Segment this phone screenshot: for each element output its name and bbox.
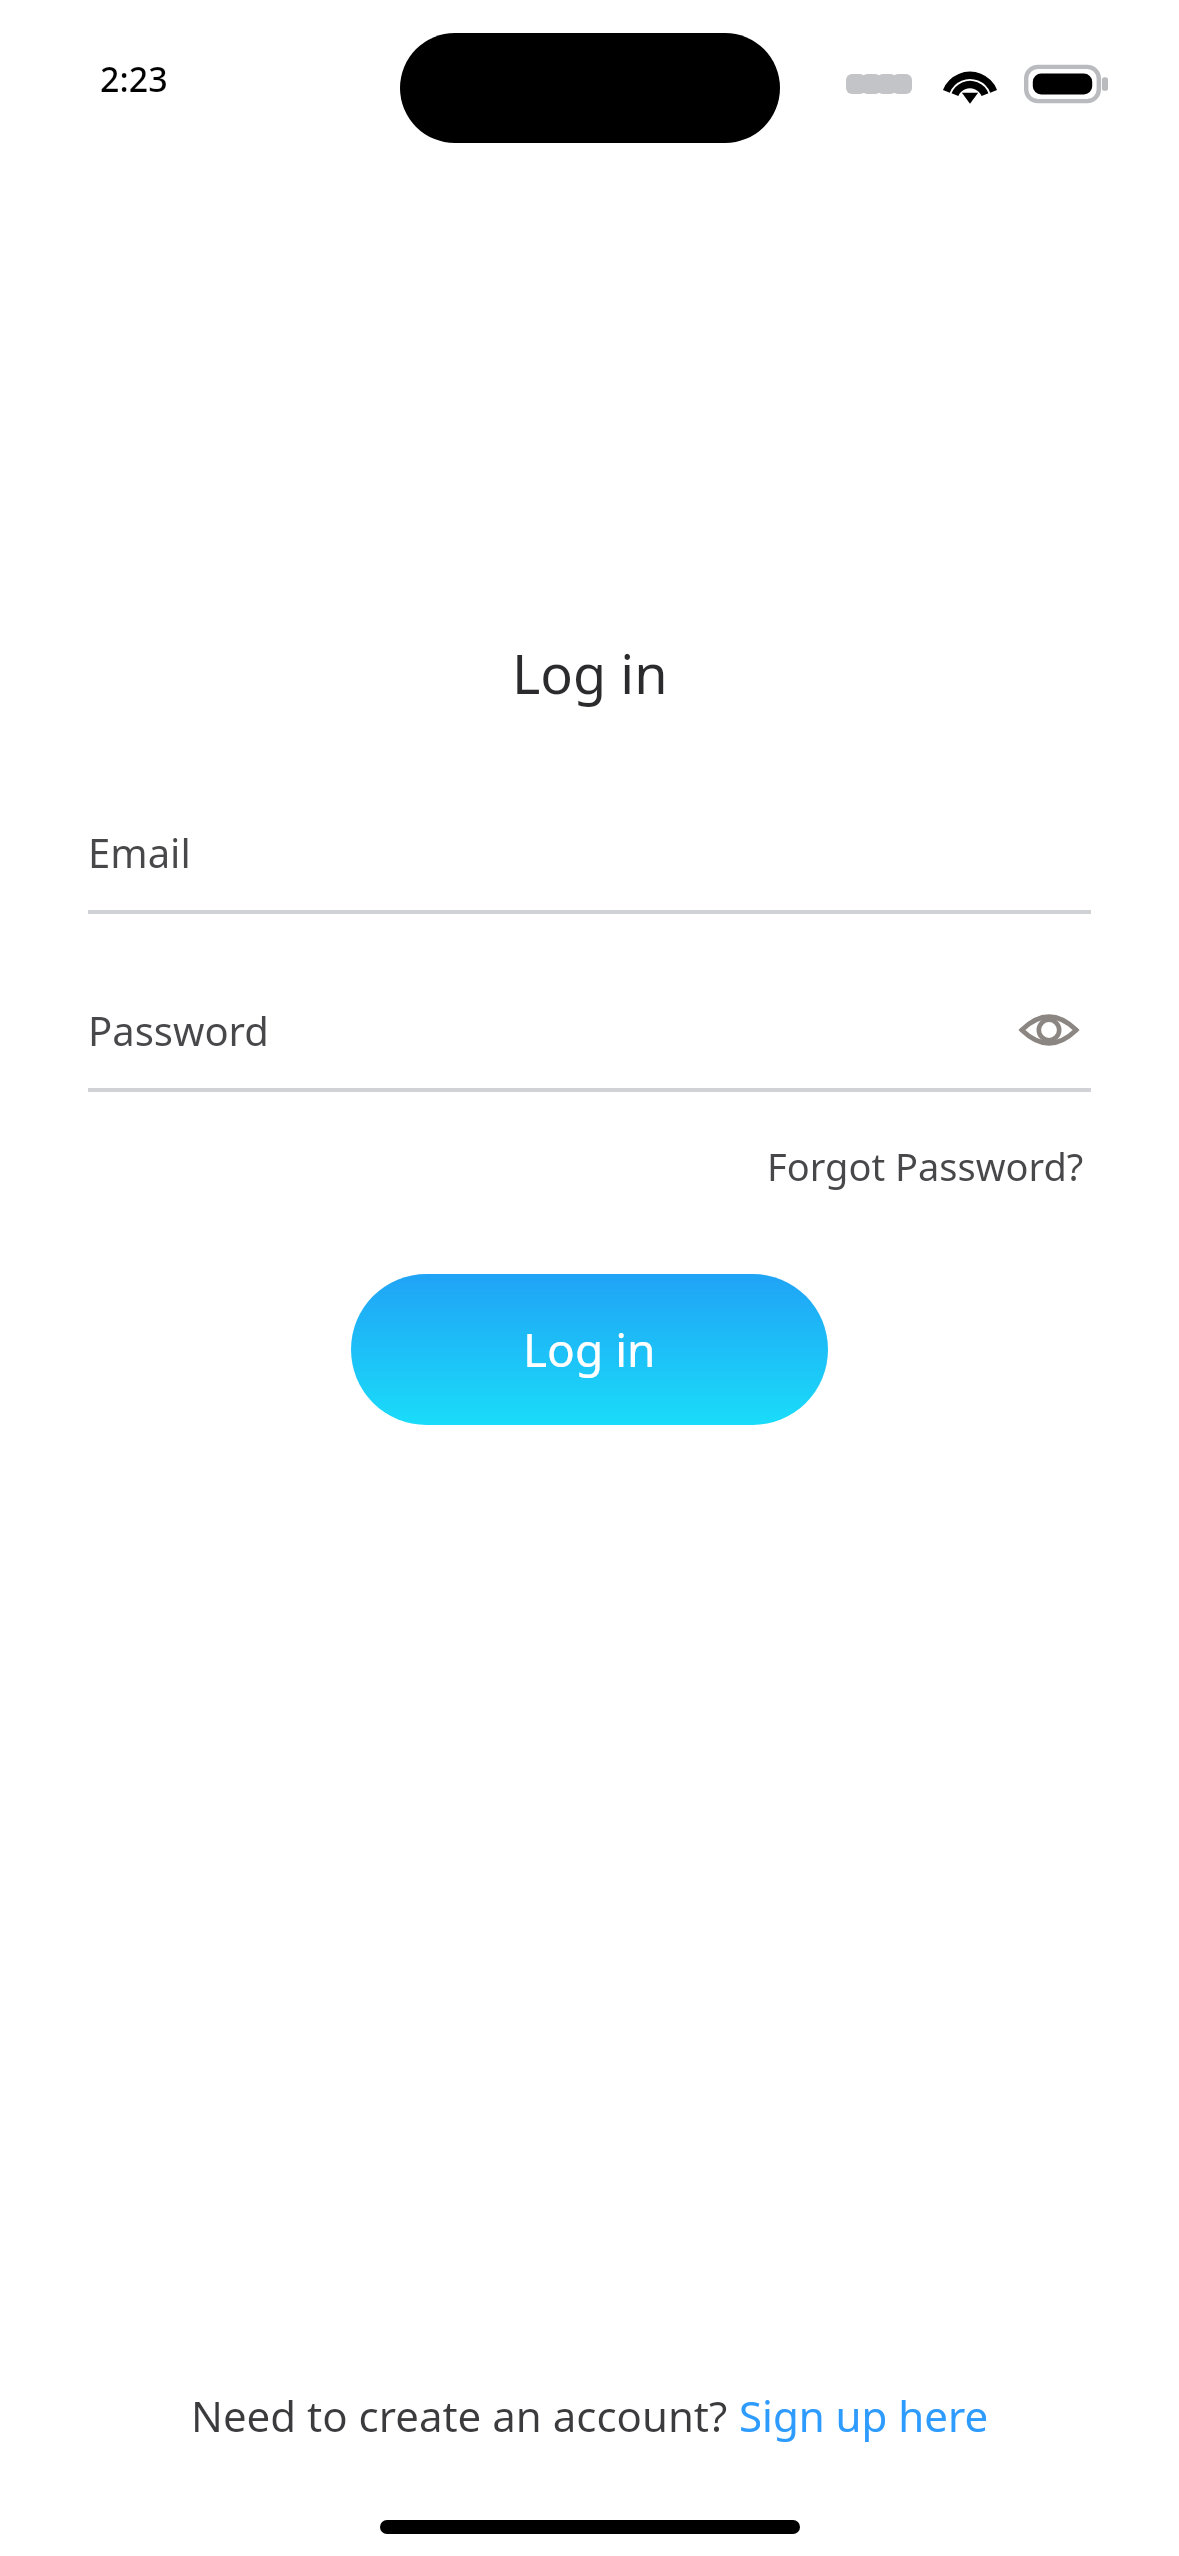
button[interactable]: Sign up here bbox=[739, 2387, 989, 2444]
staticText: Log in bbox=[512, 636, 668, 710]
staticText: Need to create an account? bbox=[191, 2387, 739, 2444]
button[interactable]: Password bbox=[88, 988, 1091, 1092]
staticText: Password bbox=[88, 1003, 269, 1057]
button[interactable]: Forgot Password? bbox=[761, 1134, 1090, 1198]
staticText: Forgot Password? bbox=[767, 1140, 1084, 1192]
staticText: Log in bbox=[523, 1318, 656, 1381]
button[interactable]: Email bbox=[88, 810, 1091, 914]
button[interactable]: Show password bbox=[1007, 988, 1091, 1072]
staticText: Sign up here bbox=[739, 2387, 989, 2444]
button[interactable]: Log in bbox=[351, 1274, 828, 1425]
staticText: 2:23 bbox=[100, 56, 168, 102]
staticText: Email bbox=[88, 825, 191, 879]
